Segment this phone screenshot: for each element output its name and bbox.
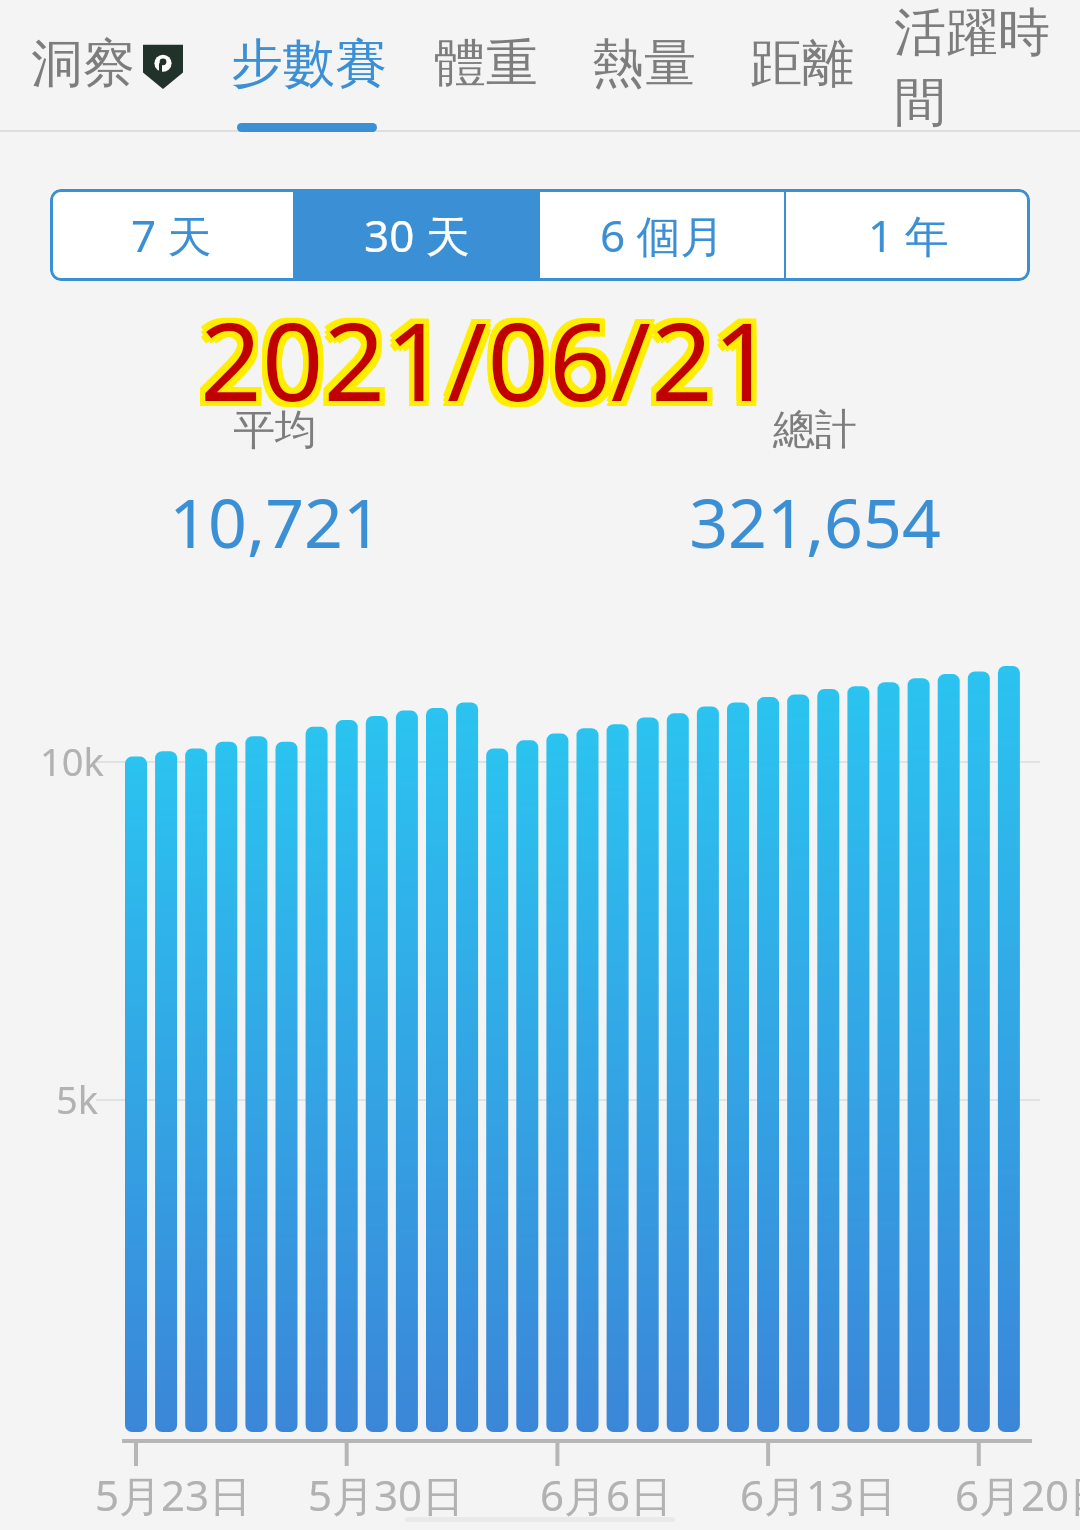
staticText: 2021/06/21 — [205, 286, 780, 433]
staticText: 7 天 — [131, 205, 212, 265]
button[interactable]: 活躍時間 — [894, 0, 1080, 128]
staticText: 6月6日 — [540, 1466, 673, 1523]
button[interactable]: 步數賽 — [228, 0, 390, 128]
staticText: 總計 — [773, 404, 857, 457]
staticText: 活躍時間 — [894, 0, 1080, 128]
staticText: 2021/06/21 — [205, 281, 780, 428]
staticText: 2021/06/21 — [195, 281, 770, 428]
staticText: 321,654 — [689, 475, 941, 568]
button[interactable]: 熱量 — [578, 0, 710, 128]
staticText: 2021/06/21 — [200, 291, 775, 438]
staticText: 2021/06/21 — [195, 291, 770, 438]
staticText: 5k — [56, 1073, 99, 1125]
button[interactable]: 洞察 — [14, 0, 200, 128]
staticText: 洞察 — [31, 31, 135, 97]
staticText: 5月30日 — [308, 1466, 465, 1523]
button[interactable]: 7 天 — [50, 189, 293, 281]
staticText: 體重 — [434, 31, 538, 97]
staticText: 2021/06/21 — [205, 291, 780, 438]
staticText: 1 年 — [868, 205, 949, 265]
staticText: 5月23日 — [95, 1466, 252, 1523]
staticText: 熱量 — [592, 31, 696, 97]
staticText: 30 天 — [364, 205, 470, 265]
button[interactable]: 距離 — [736, 0, 868, 128]
staticText: 2021/06/21 — [200, 286, 775, 433]
staticText: 10,721 — [169, 475, 382, 568]
staticText: 10k — [40, 735, 104, 787]
staticText: 平均 — [233, 404, 317, 457]
staticText: 2021/06/21 — [195, 286, 770, 433]
button[interactable]: 30 天 — [295, 189, 538, 281]
staticText: 2021/06/21 — [200, 281, 775, 428]
button[interactable]: 1 年 — [786, 189, 1030, 281]
button[interactable]: 6 個月 — [540, 189, 784, 281]
staticText: 距離 — [750, 31, 854, 97]
staticText: 步數賽 — [231, 31, 387, 97]
staticText: 6月20日 — [955, 1466, 1080, 1523]
staticText: 6 個月 — [600, 205, 725, 265]
staticText: 6月13日 — [740, 1466, 897, 1523]
button[interactable]: 體重 — [420, 0, 552, 128]
